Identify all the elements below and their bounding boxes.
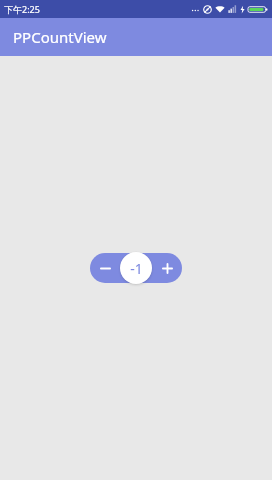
staticText: 下午2:25 — [4, 3, 40, 15]
button[interactable]: Current count — [120, 252, 152, 284]
button[interactable]: Decrease count — [90, 253, 120, 283]
button[interactable]: Increase count — [152, 253, 182, 283]
staticText: -1 — [130, 259, 143, 278]
staticText: PPCountView — [13, 27, 107, 47]
